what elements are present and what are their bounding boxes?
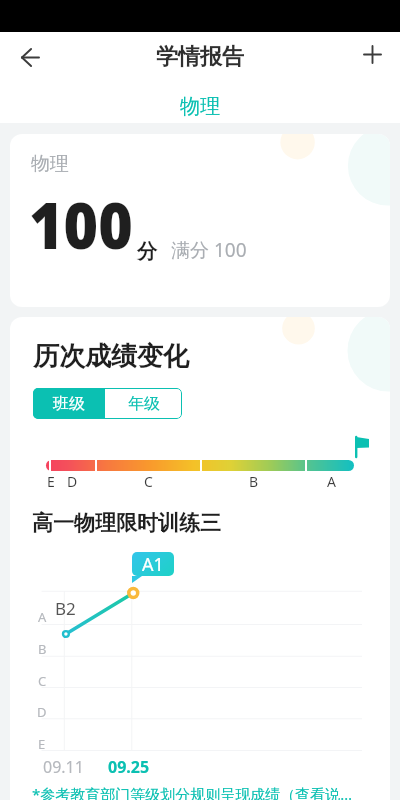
staticText: 物理 bbox=[180, 94, 220, 119]
button[interactable]: A1 bbox=[132, 552, 174, 576]
staticText: D bbox=[67, 472, 78, 491]
staticText: B bbox=[38, 640, 47, 658]
button[interactable]: Add bbox=[350, 32, 394, 76]
staticText: C bbox=[144, 472, 153, 491]
staticText: 09.11 bbox=[43, 756, 84, 778]
staticText: B2 bbox=[55, 597, 76, 620]
staticText: A bbox=[327, 472, 336, 491]
staticText: 物理 bbox=[31, 152, 69, 176]
staticText: 班级 bbox=[53, 394, 85, 414]
button[interactable]: 物理 bbox=[10, 134, 390, 307]
button[interactable]: Back bbox=[8, 35, 52, 79]
button[interactable]: 班级 bbox=[33, 388, 105, 419]
button[interactable]: 年级 bbox=[105, 388, 182, 419]
staticText: 09.25 bbox=[108, 756, 150, 778]
staticText: 历次成绩变化 bbox=[33, 340, 189, 373]
staticText: A bbox=[38, 608, 47, 626]
staticText: 学情报告 bbox=[156, 43, 244, 71]
staticText: 年级 bbox=[128, 394, 160, 414]
staticText: 高一物理限时训练三 bbox=[32, 510, 221, 536]
staticText: E bbox=[38, 735, 46, 753]
staticText: 分 bbox=[137, 239, 157, 264]
staticText: A1 bbox=[142, 552, 164, 576]
staticText: C bbox=[38, 672, 47, 690]
staticText: B bbox=[249, 472, 259, 491]
staticText: D bbox=[37, 703, 47, 721]
staticText: E bbox=[47, 472, 55, 491]
staticText: 满分 100 bbox=[171, 237, 247, 263]
staticText: 100 bbox=[29, 182, 133, 268]
button[interactable]: 物理 bbox=[162, 90, 238, 123]
staticText: *参考教育部门等级划分规则呈现成绩（查看说… bbox=[32, 784, 353, 800]
